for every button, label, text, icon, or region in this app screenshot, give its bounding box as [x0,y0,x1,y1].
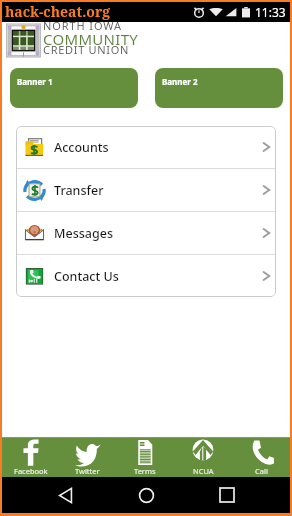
button[interactable]: Back [49,478,83,512]
button[interactable]: Messages [16,212,276,254]
button[interactable]: Facebook [2,438,59,477]
staticText: Facebook [14,466,48,476]
staticText: 11:33 [255,4,286,20]
staticText: Messages [54,225,113,242]
button[interactable]: Call [232,438,290,477]
button[interactable]: Twitter [59,438,116,477]
staticText: NORTH IOWA [43,18,122,33]
button[interactable]: Terms [116,438,174,477]
staticText: Contact Us [54,268,119,285]
staticText: Accounts [54,139,109,156]
staticText: Call [255,466,268,476]
button[interactable]: Banner 1 [10,68,138,108]
staticText: Banner 2 [162,76,198,87]
button[interactable]: NCUA [174,438,232,477]
staticText: Transfer [54,182,104,199]
button[interactable]: Contact Us [16,255,276,297]
staticText: Twitter [75,466,100,476]
staticText: Banner 1 [17,76,53,87]
staticText: hack-cheat.org [5,2,111,21]
staticText: COMMUNITY [43,29,139,49]
button[interactable]: Home [129,478,163,512]
button[interactable]: Banner 2 [155,68,283,108]
button[interactable]: Recent apps [210,478,244,512]
staticText: NCUA [193,466,214,476]
staticText: CREDIT UNION [43,42,130,57]
staticText: Terms [134,466,156,476]
button[interactable]: Accounts [16,126,276,168]
button[interactable]: Transfer [16,169,276,211]
